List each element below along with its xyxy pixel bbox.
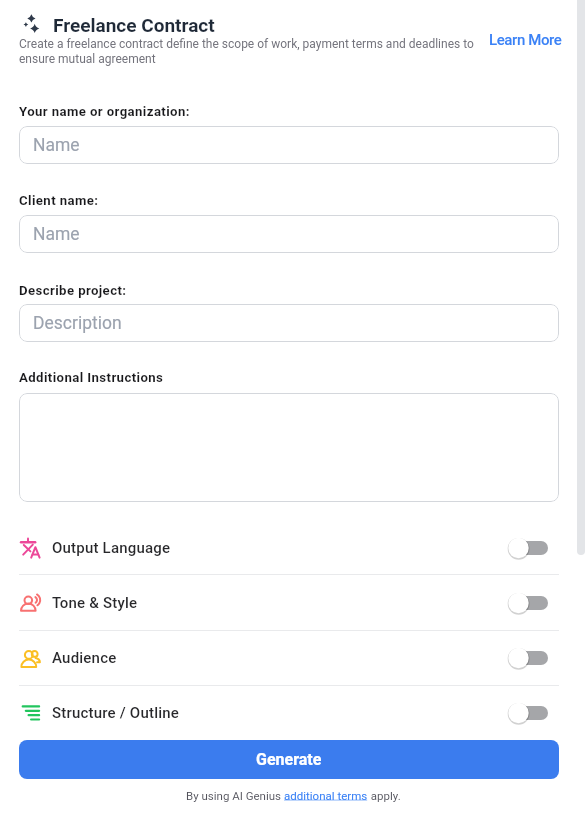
staticText: Generate <box>256 750 322 769</box>
staticText: Create a freelance contract define the s… <box>19 37 485 66</box>
staticText: Tone & Style <box>52 594 138 612</box>
staticText: By using AI Genius <box>186 789 284 802</box>
staticText: Output Language <box>52 539 171 557</box>
button[interactable]: Structure / Outline <box>0 685 587 740</box>
button[interactable]: Description <box>19 304 559 342</box>
staticText: Name <box>33 224 80 245</box>
staticText: Freelance Contract <box>53 14 215 36</box>
button[interactable]: Name <box>19 126 559 164</box>
button[interactable]: Name <box>19 215 559 253</box>
button[interactable]: Output Language <box>0 520 587 575</box>
button[interactable]: Tone & Style <box>0 575 587 630</box>
staticText: Your name or organization: <box>19 104 190 119</box>
staticText: Client name: <box>19 193 99 208</box>
button[interactable] <box>19 393 559 502</box>
staticText: Name <box>33 135 80 156</box>
button[interactable]: Generate <box>19 740 559 779</box>
button[interactable]: additional terms <box>284 789 368 802</box>
staticText: Describe project: <box>19 283 127 298</box>
button[interactable]: Audience <box>0 630 587 685</box>
staticText: Audience <box>52 649 117 667</box>
staticText: apply. <box>368 789 401 802</box>
staticText: Description <box>33 313 122 334</box>
staticText: Structure / Outline <box>52 704 180 722</box>
button[interactable]: Learn More <box>489 31 562 49</box>
staticText: Additional Instructions <box>19 370 164 385</box>
